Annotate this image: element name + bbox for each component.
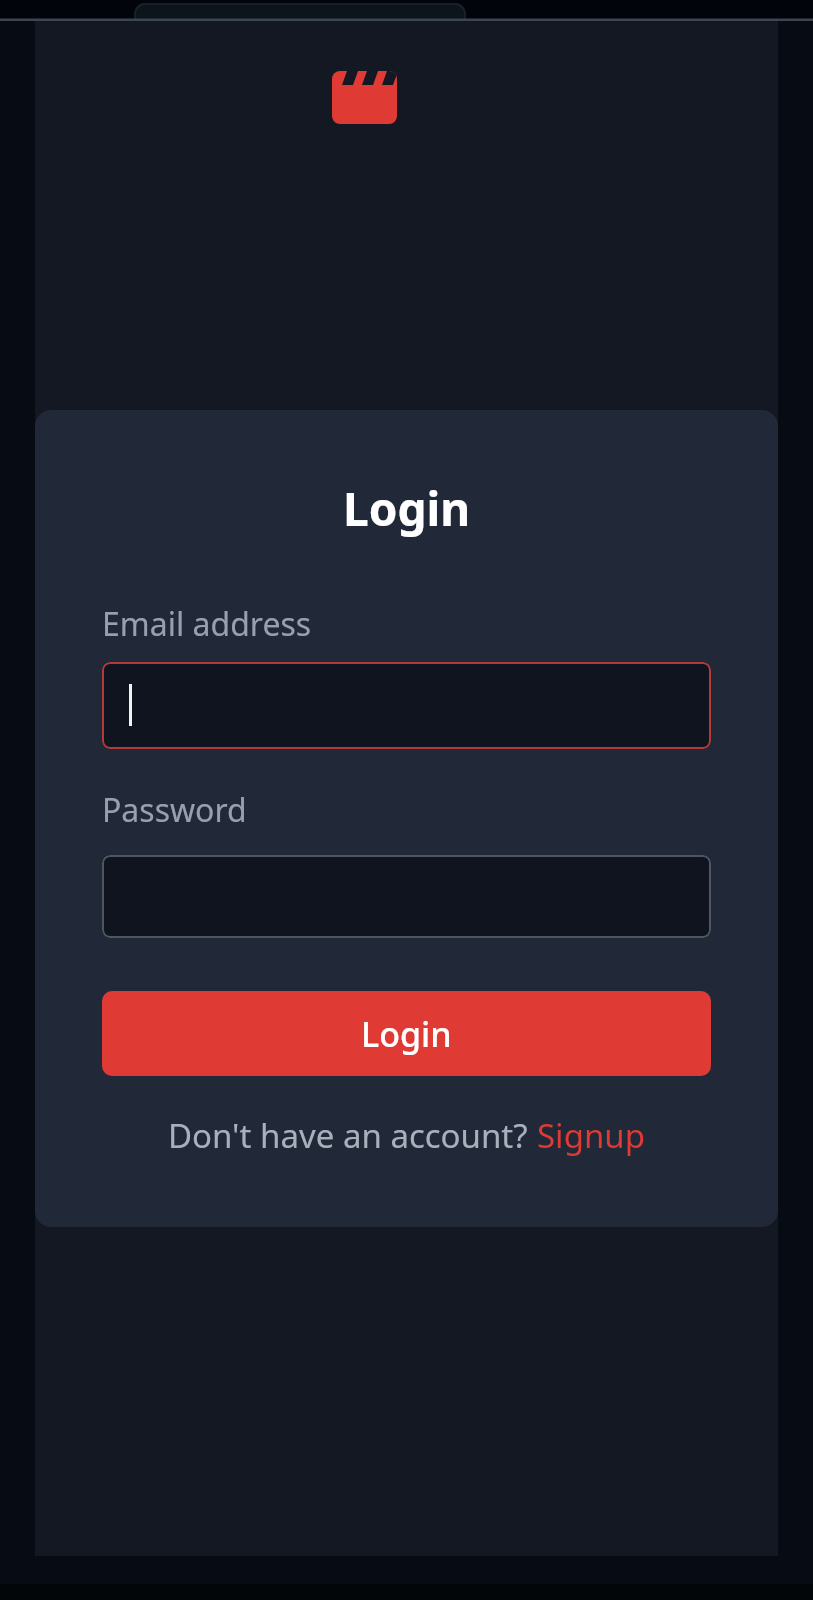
staticText: Email address <box>102 602 312 646</box>
staticText: Login <box>361 1011 452 1057</box>
staticText: Login <box>343 477 471 540</box>
button[interactable]: Signup <box>537 1113 646 1158</box>
button[interactable] <box>102 855 711 938</box>
button[interactable] <box>102 662 711 749</box>
button[interactable]: Login <box>102 991 711 1076</box>
staticText: Signup <box>537 1113 646 1158</box>
staticText: Password <box>102 788 247 832</box>
staticText: Don't have an account? <box>168 1113 537 1158</box>
